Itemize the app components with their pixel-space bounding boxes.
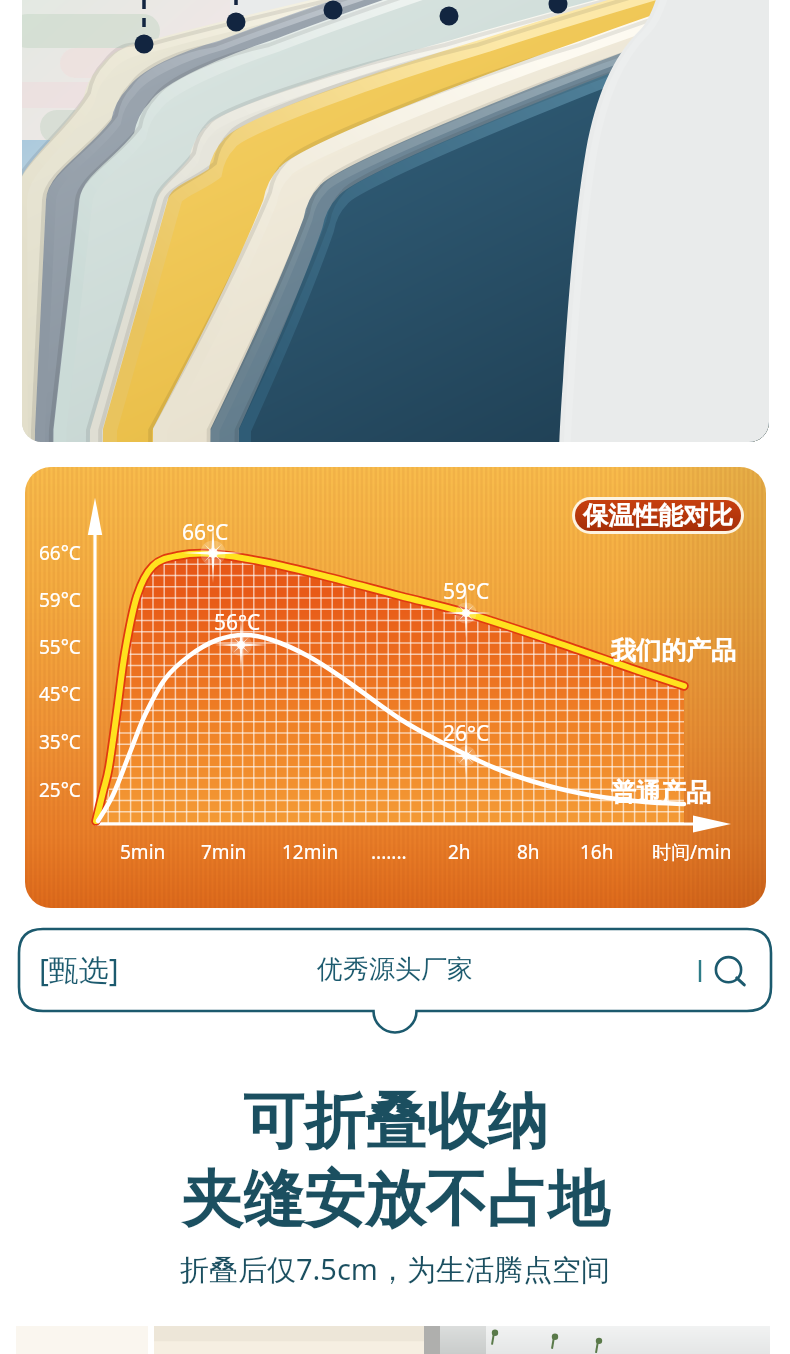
staticText: 5min [120,839,166,865]
staticText: 26°C [443,719,490,748]
staticText: 时间/min [652,839,732,865]
staticText: 66°C [182,518,229,547]
staticText: 折叠后仅7.5cm，为生活腾点空间 [180,1249,610,1289]
button[interactable]: 保温性能对比 [575,500,741,531]
staticText: 25°C [39,777,81,803]
staticText: 12min [282,839,339,865]
staticText: 45°C [39,681,81,707]
staticText: 8h [517,839,540,865]
staticText: 可折叠收纳 [243,1083,548,1160]
staticText: ....... [371,839,407,865]
staticText: 59°C [39,587,81,613]
button[interactable]: 优秀源头厂家 [195,943,595,995]
staticText: 56°C [214,608,261,637]
staticText: 2h [448,839,471,865]
staticText: 保温性能对比 [583,500,733,531]
staticText: 普通产品 [611,777,711,808]
button[interactable]: [甄选] [39,943,169,995]
staticText: 优秀源头厂家 [317,953,473,986]
staticText: 夹缝安放不占地 [182,1161,609,1238]
button[interactable]: Search [700,942,757,999]
staticText: 35°C [39,729,81,755]
staticText: 16h [580,839,614,865]
staticText: 59°C [443,577,490,606]
staticText: 7min [201,839,247,865]
staticText: 66°C [39,540,81,566]
staticText: [甄选] [39,949,119,990]
staticText: 55°C [39,634,81,660]
staticText: 我们的产品 [611,635,736,666]
